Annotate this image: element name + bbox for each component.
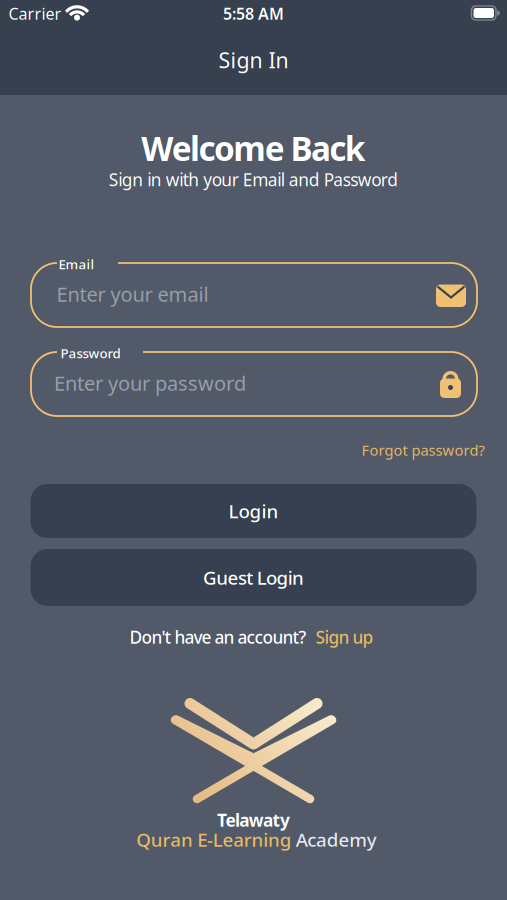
staticText: Academy: [296, 827, 377, 852]
staticText: Password: [60, 344, 120, 362]
staticText: Enter your password: [54, 370, 246, 396]
staticText: 5:58 AM: [223, 3, 284, 24]
staticText: Enter your email: [56, 281, 208, 307]
staticText: Login: [228, 499, 278, 523]
button[interactable]: Forgot password?: [361, 440, 484, 460]
staticText: Guest Login: [203, 565, 304, 590]
staticText: Telawaty: [217, 808, 290, 831]
staticText: Sign in with your Email and Password: [109, 168, 398, 191]
staticText: Forgot password?: [361, 440, 484, 460]
button[interactable]: Sign up: [315, 625, 373, 648]
staticText: Welcome Back: [141, 126, 366, 170]
staticText: Quran E-Learning: [136, 827, 292, 852]
staticText: Carrier: [8, 3, 61, 24]
staticText: Email: [58, 255, 94, 273]
staticText: Sign In: [218, 46, 288, 74]
staticText: Don't have an account?: [129, 625, 306, 648]
staticText: Sign up: [315, 625, 373, 648]
button[interactable]: Password: [31, 352, 477, 416]
button[interactable]: Login: [30, 484, 476, 538]
button[interactable]: Guest Login: [30, 549, 476, 606]
button[interactable]: Email: [31, 263, 477, 327]
